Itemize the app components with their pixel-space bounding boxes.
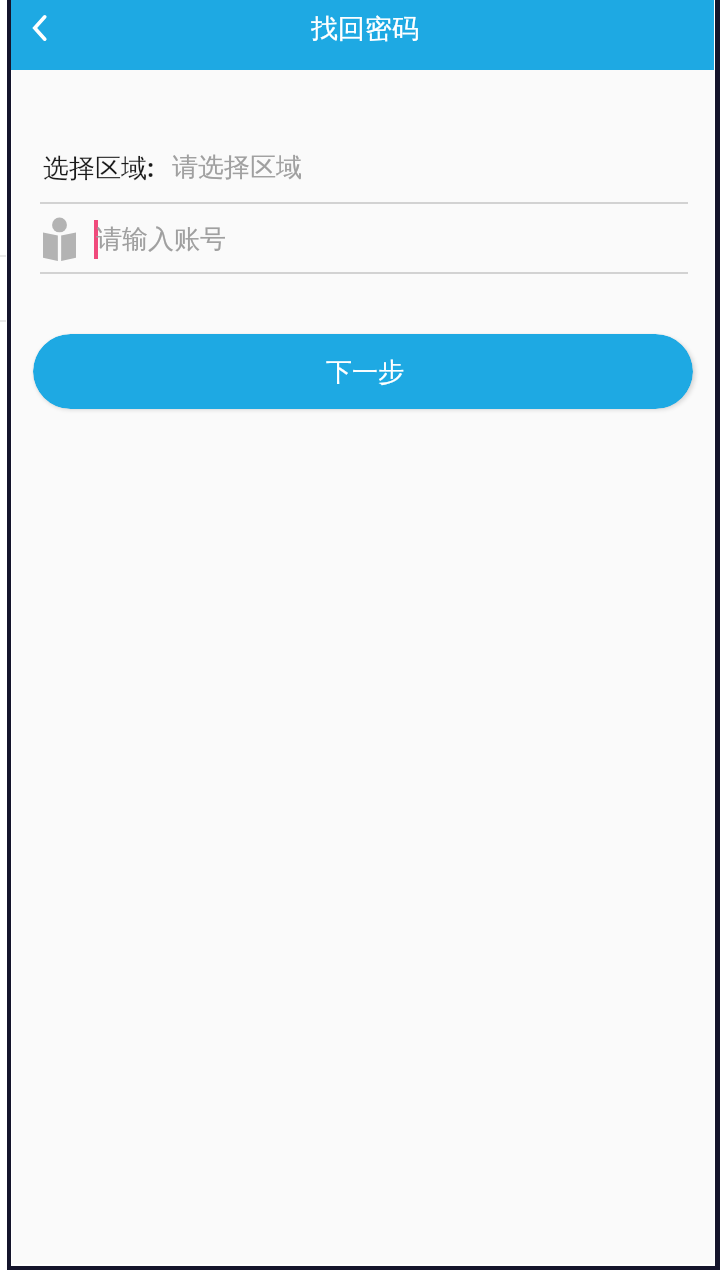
staticText: 找回密码 xyxy=(311,12,419,46)
staticText: 选择区域: xyxy=(43,149,155,185)
button[interactable]: 下一步 xyxy=(33,334,693,409)
staticText: 下一步 xyxy=(326,356,404,389)
button[interactable]: 选择区域: xyxy=(43,140,691,194)
button[interactable]: Back xyxy=(11,0,67,56)
staticText: 请选择区域 xyxy=(172,151,302,184)
staticText: 请输入账号 xyxy=(96,223,226,256)
